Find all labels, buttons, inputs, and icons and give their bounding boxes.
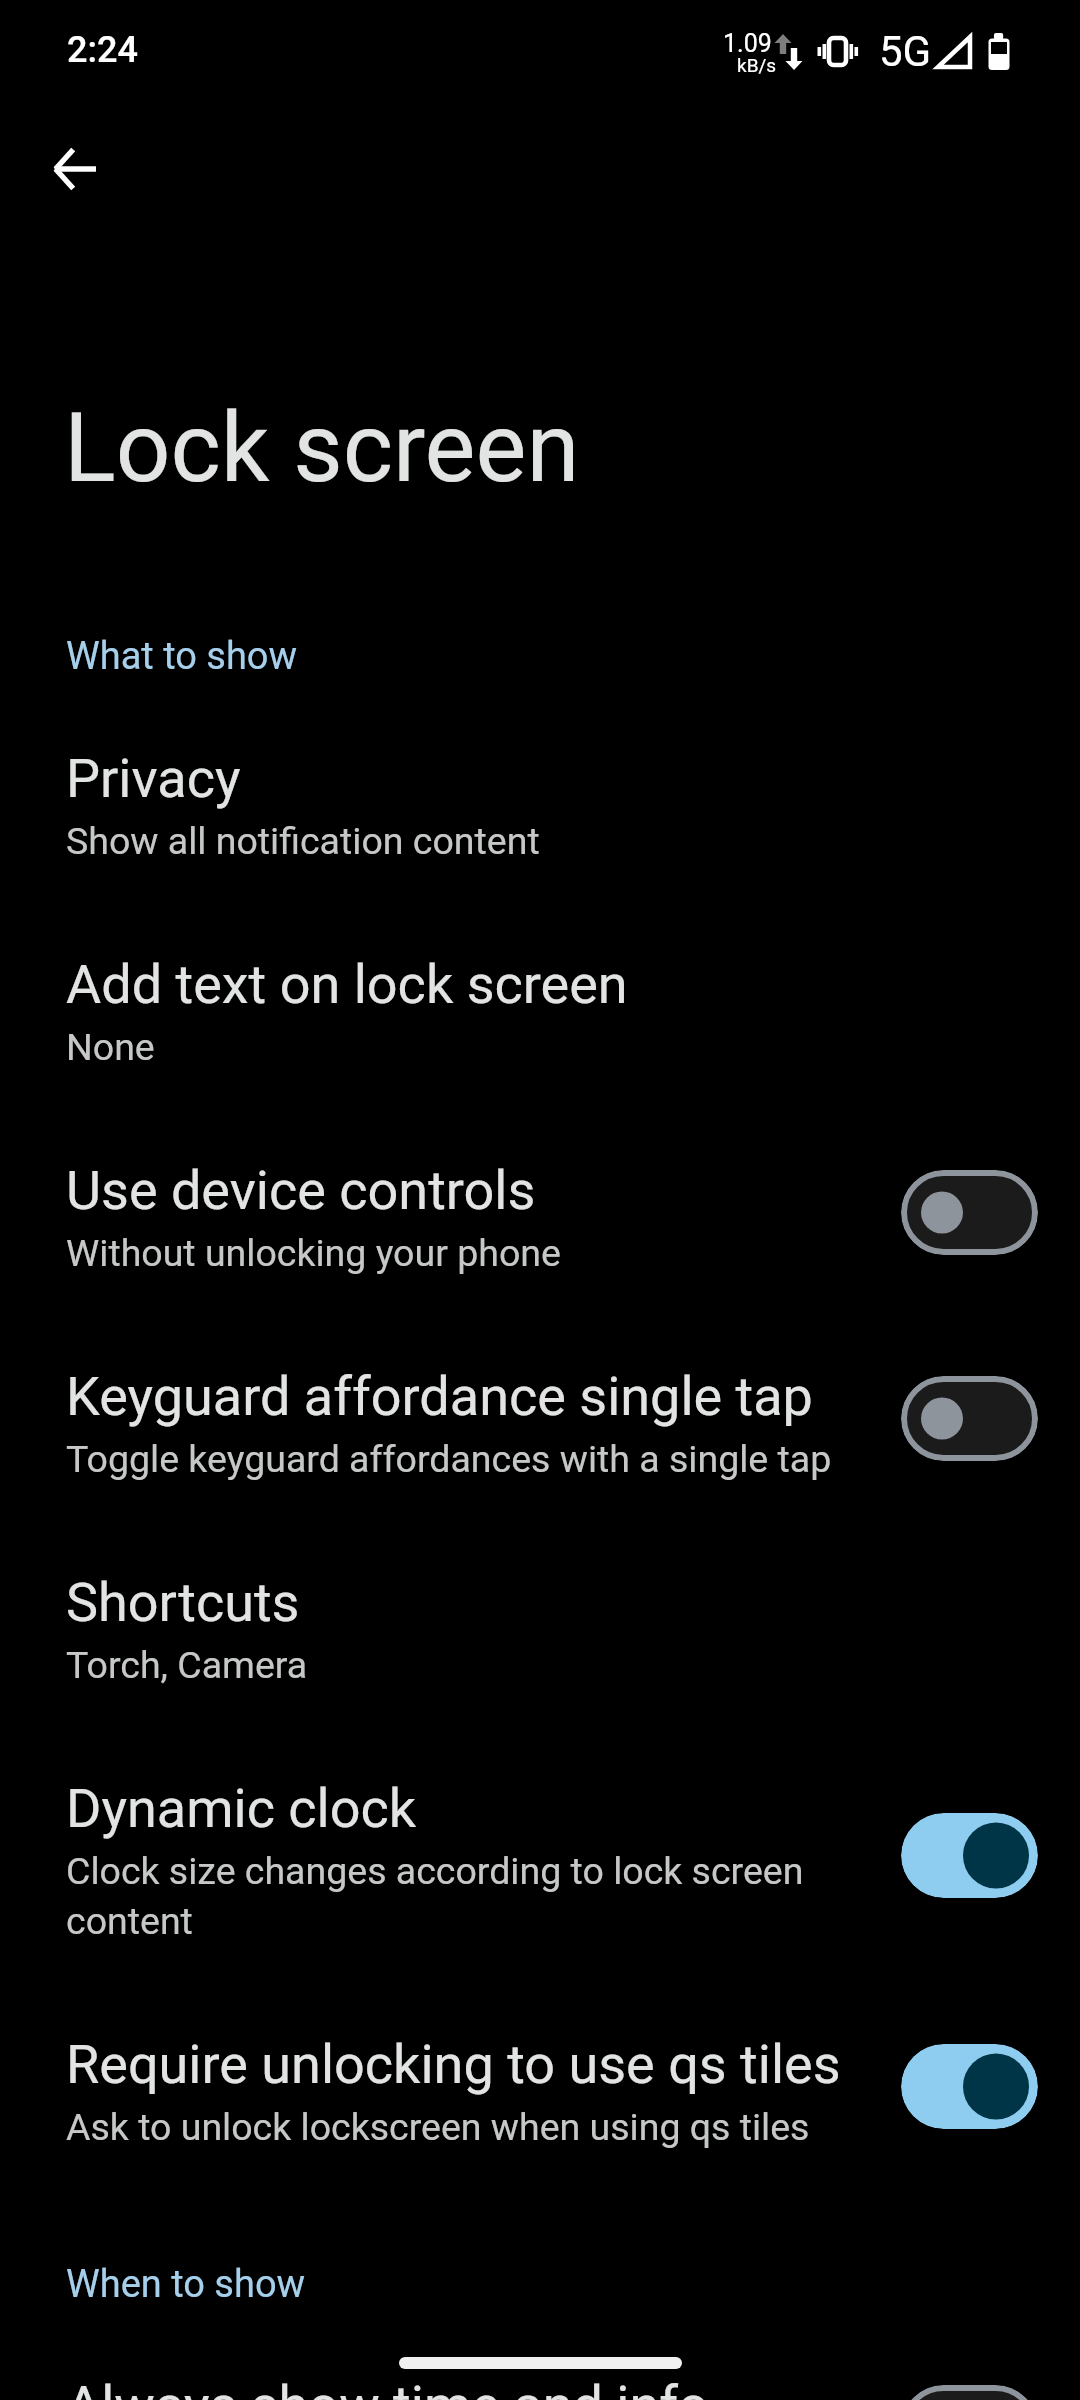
button[interactable]: Add text on lock screen xyxy=(0,909,1080,1115)
staticText: Require unlocking to use qs tiles xyxy=(66,2034,841,2096)
staticText: Torch, Camera xyxy=(66,1638,308,1688)
button[interactable]: Navigate up xyxy=(26,121,122,217)
staticText: When to show xyxy=(66,2261,306,2307)
staticText: Clock size changes according to lock scr… xyxy=(66,1844,877,1944)
button[interactable]: On xyxy=(901,2044,1038,2129)
button[interactable]: Off xyxy=(901,1170,1038,1255)
staticText: Dynamic clock xyxy=(66,1778,417,1840)
staticText: Lock screen xyxy=(64,392,580,504)
staticText: Add text on lock screen xyxy=(66,954,628,1016)
staticText: Shortcuts xyxy=(66,1572,300,1634)
button[interactable]: Shortcuts xyxy=(0,1527,1080,1733)
staticText: 2:24 xyxy=(67,30,138,70)
staticText: Without unlocking your phone xyxy=(66,1226,561,1276)
staticText: None xyxy=(66,1020,155,1070)
staticText: Always show time and info xyxy=(66,2375,709,2400)
staticText: Show all notification content xyxy=(66,814,540,864)
staticText: What to show xyxy=(66,633,298,679)
button[interactable]: Require unlocking to use qs tiles xyxy=(0,1989,1080,2195)
button[interactable]: Privacy xyxy=(0,703,1080,909)
staticText: Privacy xyxy=(66,748,241,810)
button[interactable]: On xyxy=(901,1813,1038,1898)
button[interactable]: Always show time and info xyxy=(0,2330,1080,2400)
staticText: kB/s xyxy=(737,55,777,76)
button[interactable]: Keyguard affordance single tap xyxy=(0,1321,1080,1527)
staticText: Use device controls xyxy=(66,1160,536,1222)
staticText: Keyguard affordance single tap xyxy=(66,1366,813,1428)
button[interactable]: Use device controls xyxy=(0,1115,1080,1321)
staticText: Ask to unlock lockscreen when using qs t… xyxy=(66,2100,810,2150)
staticText: Toggle keyguard affordances with a singl… xyxy=(66,1432,832,1482)
button[interactable]: Off xyxy=(901,2385,1038,2400)
staticText: 1.09 xyxy=(723,31,772,58)
button[interactable]: Dynamic clock xyxy=(0,1733,1080,1989)
button[interactable]: Off xyxy=(901,1376,1038,1461)
staticText: 5G xyxy=(879,30,932,75)
